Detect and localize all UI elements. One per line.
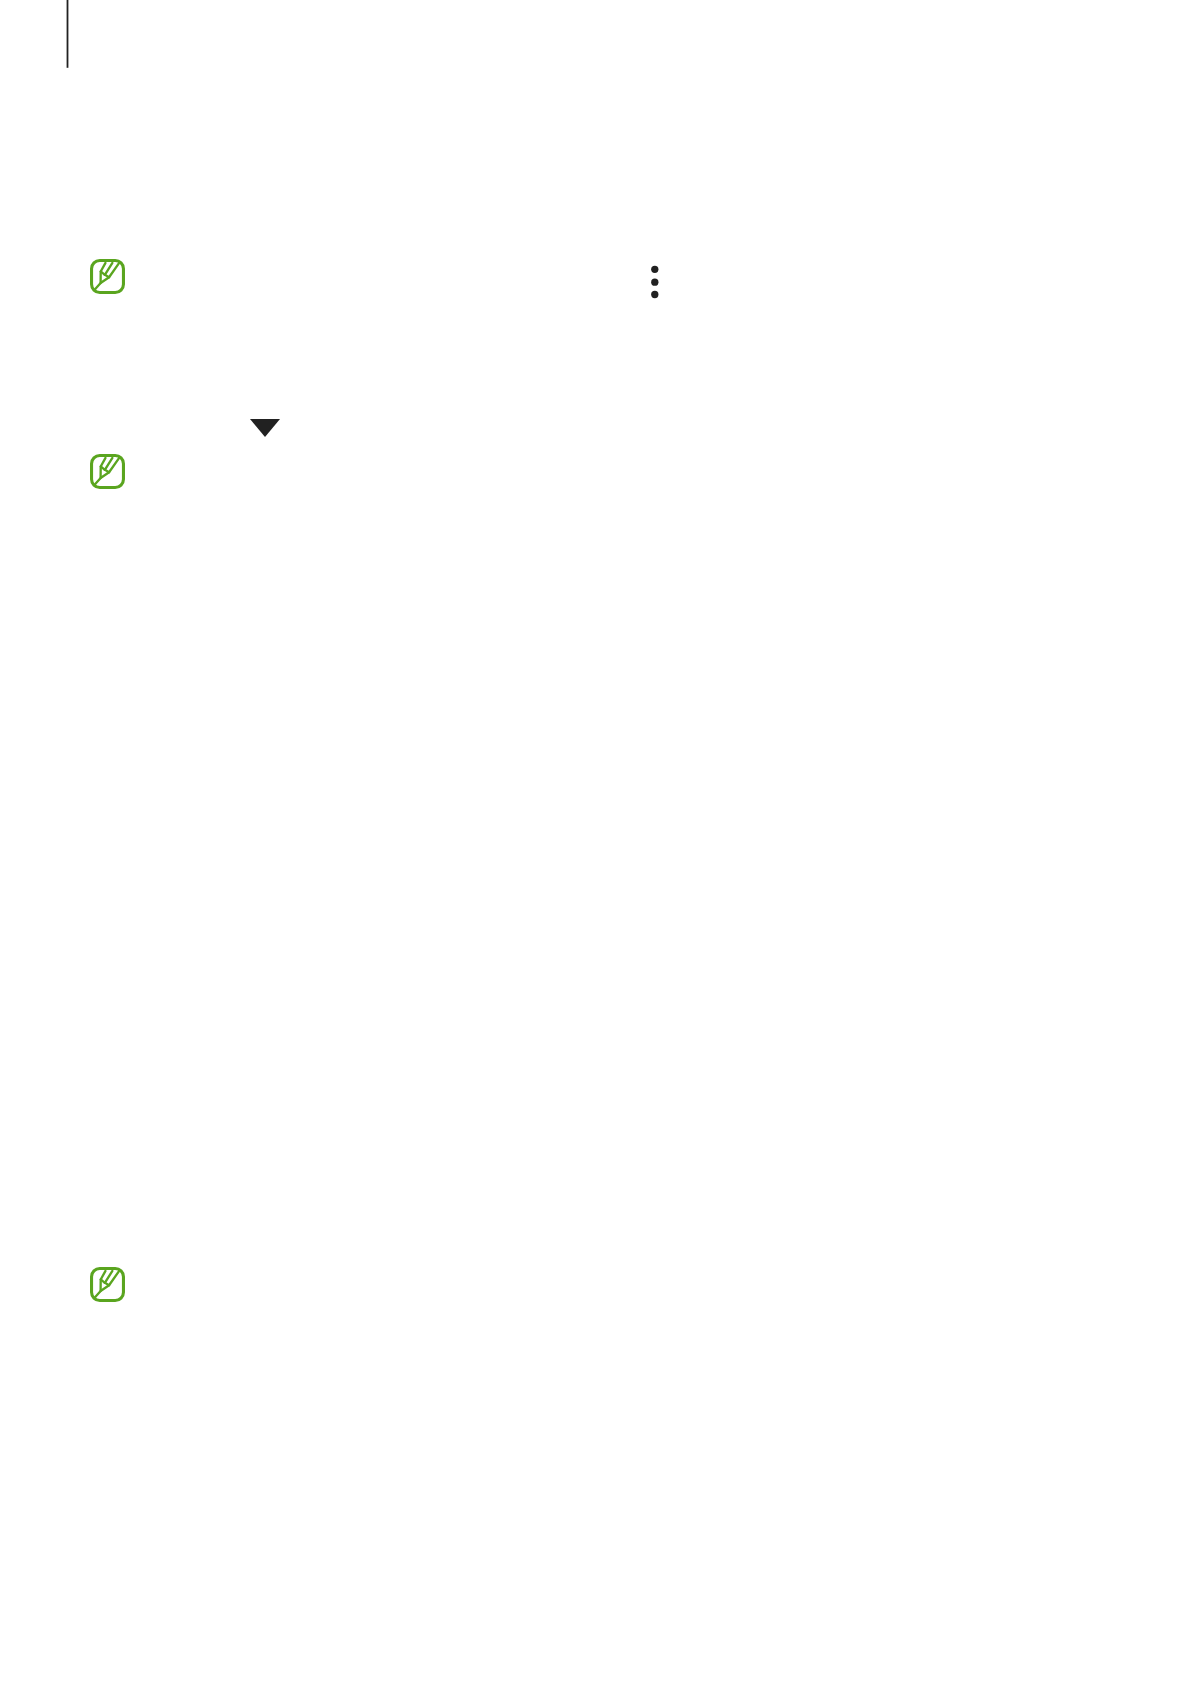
button[interactable]: Samsung Notes <box>90 454 125 489</box>
button[interactable]: Samsung Notes <box>90 259 125 294</box>
button[interactable]: Samsung Notes <box>90 1267 125 1302</box>
button[interactable]: Dropdown <box>250 418 280 437</box>
button[interactable]: More options <box>643 257 667 281</box>
